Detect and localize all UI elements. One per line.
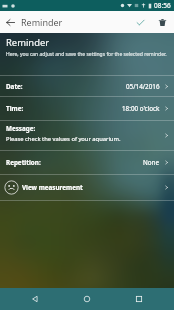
button[interactable]: Message:: [0, 121, 174, 150]
staticText: 08:56: [154, 1, 171, 10]
staticText: None: [143, 158, 160, 167]
staticText: 05/14/2016: [126, 82, 160, 91]
button[interactable]: Repetition:: [0, 151, 174, 174]
button[interactable]: Recent apps: [122, 288, 156, 310]
staticText: Repetition:: [6, 158, 41, 167]
button[interactable]: Back: [18, 288, 52, 310]
staticText: Date:: [6, 82, 23, 91]
button[interactable]: Delete: [151, 11, 173, 33]
staticText: Please check the values of your aquarium…: [6, 135, 121, 143]
staticText: Time:: [6, 104, 24, 113]
button[interactable]: View measurement: [0, 175, 174, 200]
staticText: Here, you can adjust and save the settin…: [6, 51, 167, 58]
staticText: View measurement: [22, 183, 83, 192]
staticText: 18:00 o'clock: [122, 104, 160, 113]
button[interactable]: Save: [129, 11, 151, 33]
button[interactable]: Time:: [0, 97, 174, 120]
staticText: Reminder: [21, 16, 63, 28]
staticText: Message:: [6, 124, 36, 133]
button[interactable]: Date:: [0, 76, 174, 96]
button[interactable]: Navigate up: [0, 12, 20, 32]
button[interactable]: Home: [70, 288, 104, 310]
staticText: Reminder: [6, 36, 50, 49]
